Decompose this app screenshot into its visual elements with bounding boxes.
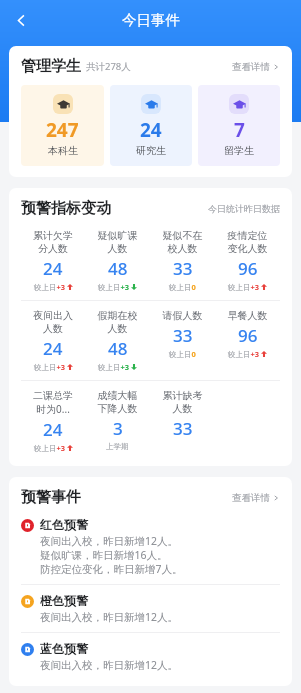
staticText: 较上日0: [169, 282, 196, 292]
staticText: 较上日+3: [34, 362, 66, 372]
button[interactable]: 返回: [6, 5, 36, 35]
button[interactable]: 假期在校 人数: [85, 307, 150, 374]
button[interactable]: 247: [21, 85, 104, 166]
staticText: 预警事件: [21, 488, 81, 507]
staticText: 夜间出入校，昨日新增12人。: [40, 610, 179, 624]
button[interactable]: 橙色预警: [21, 590, 280, 627]
staticText: 较上日+3: [228, 282, 260, 292]
staticText: 3: [113, 417, 123, 440]
staticText: 33: [173, 324, 193, 347]
staticText: 请假人数: [150, 309, 215, 322]
button[interactable]: 红色预警: [21, 514, 280, 579]
staticText: 今日统计昨日数据: [208, 203, 280, 214]
button[interactable]: 早餐人数: [215, 307, 280, 361]
staticText: 较上日+3: [98, 362, 130, 372]
staticText: 疑似旷课 人数: [85, 229, 150, 255]
staticText: 管理学生: [21, 57, 81, 76]
staticText: 24: [43, 257, 63, 280]
staticText: 48: [108, 257, 128, 280]
button[interactable]: 疫情定位 变化人数: [215, 227, 280, 294]
staticText: 较上日+3: [34, 282, 66, 292]
button[interactable]: 二课总学 时为0...: [21, 387, 85, 455]
staticText: 96: [238, 257, 258, 280]
staticText: 24: [43, 418, 63, 441]
staticText: 24: [140, 117, 162, 143]
button[interactable]: 7: [198, 85, 280, 166]
staticText: 本科生: [48, 144, 78, 157]
staticText: 较上日+3: [228, 349, 260, 359]
staticText: 留学生: [224, 144, 254, 157]
staticText: 较上日0: [169, 349, 196, 359]
staticText: 今日事件: [122, 11, 180, 29]
staticText: 查看详情: [232, 492, 270, 504]
staticText: 夜间出入 人数: [21, 309, 85, 335]
staticText: 共计278人: [86, 60, 131, 73]
staticText: 33: [173, 257, 193, 280]
staticText: 蓝色预警: [40, 641, 88, 656]
button[interactable]: 疑似不在 校人数: [150, 227, 215, 294]
staticText: 疑似不在 校人数: [150, 229, 215, 255]
staticText: 48: [108, 337, 128, 360]
button[interactable]: 成绩大幅 下降人数: [85, 387, 150, 453]
staticText: 累计缺考 人数: [150, 389, 215, 415]
staticText: 夜间出入校，昨日新增12人。: [40, 658, 179, 672]
button[interactable]: 请假人数: [150, 307, 215, 361]
staticText: 预警指标变动: [21, 199, 111, 218]
staticText: 33: [173, 417, 193, 440]
button[interactable]: 24: [110, 85, 192, 166]
staticText: 较上日+3: [34, 443, 66, 453]
staticText: 累计欠学 分人数: [21, 229, 85, 255]
button[interactable]: 累计欠学 分人数: [21, 227, 85, 294]
staticText: 早餐人数: [215, 309, 280, 322]
staticText: 防控定位变化，昨日新增7人。: [40, 562, 183, 576]
button[interactable]: 疑似旷课 人数: [85, 227, 150, 294]
staticText: 24: [43, 337, 63, 360]
staticText: 红色预警: [40, 517, 88, 532]
staticText: 疑似旷课，昨日新增16人。: [40, 548, 168, 562]
staticText: 7: [234, 117, 245, 143]
button[interactable]: 蓝色预警: [21, 638, 280, 675]
button[interactable]: 查看详情: [226, 490, 280, 506]
staticText: 查看详情: [232, 61, 270, 73]
staticText: 二课总学 时为0...: [21, 389, 85, 416]
staticText: 96: [238, 324, 258, 347]
button[interactable]: 夜间出入 人数: [21, 307, 85, 374]
button[interactable]: 累计缺考 人数: [150, 387, 215, 454]
staticText: 假期在校 人数: [85, 309, 150, 335]
button[interactable]: 查看详情: [226, 59, 280, 75]
staticText: 夜间出入校，昨日新增12人。: [40, 534, 179, 548]
staticText: 上学期: [106, 442, 129, 451]
staticText: 较上日+3: [98, 282, 130, 292]
staticText: 橙色预警: [40, 593, 88, 608]
staticText: 成绩大幅 下降人数: [85, 389, 150, 415]
staticText: 研究生: [136, 144, 166, 157]
staticText: 疫情定位 变化人数: [215, 229, 280, 255]
staticText: 247: [46, 117, 79, 143]
